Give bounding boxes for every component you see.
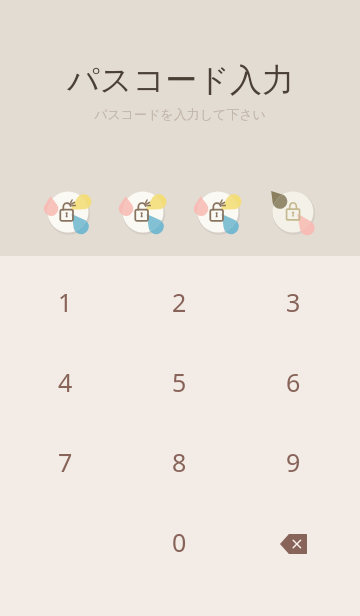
button[interactable]: 5	[122, 342, 236, 422]
button[interactable]: 3	[236, 262, 350, 342]
staticText: 3	[286, 285, 301, 319]
staticText: 7	[58, 445, 73, 479]
button[interactable]: 4	[8, 342, 122, 422]
staticText: 2	[172, 285, 187, 319]
button[interactable]: 0	[122, 502, 236, 582]
button[interactable]: 9	[236, 422, 350, 502]
button[interactable]: 7	[8, 422, 122, 502]
staticText: 8	[172, 445, 187, 479]
staticText: パスコード入力	[67, 60, 294, 100]
staticText: 6	[286, 365, 301, 399]
button[interactable]: Backspace	[236, 502, 350, 582]
button[interactable]: 6	[236, 342, 350, 422]
staticText: 9	[286, 445, 301, 479]
staticText: パスコードを入力して下さい	[94, 106, 266, 122]
staticText: 4	[58, 365, 73, 399]
staticText: 0	[172, 525, 187, 559]
button[interactable]: 2	[122, 262, 236, 342]
staticText: 5	[172, 365, 187, 399]
button[interactable]: 8	[122, 422, 236, 502]
button[interactable]: 1	[8, 262, 122, 342]
staticText: 1	[58, 285, 73, 319]
other: Backspace	[270, 519, 316, 565]
